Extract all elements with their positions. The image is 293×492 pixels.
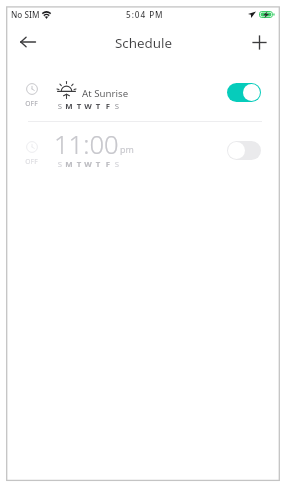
button[interactable]: Turn on schedule [227, 141, 261, 160]
staticText: T [73, 101, 85, 112]
staticText: OFF [21, 157, 42, 166]
button[interactable]: Add schedule [244, 27, 274, 57]
staticText: pm [120, 143, 134, 155]
staticText: F [102, 101, 114, 112]
staticText: No SIM [11, 9, 40, 20]
button[interactable]: OFF [7, 62, 280, 120]
staticText: S [54, 101, 66, 112]
staticText: F [102, 159, 114, 170]
staticText: At Sunrise [82, 87, 129, 100]
staticText: S [54, 159, 66, 170]
button[interactable]: Turn off schedule [227, 83, 261, 102]
staticText: W [82, 159, 94, 170]
staticText: T [92, 159, 104, 170]
staticText: 11:00 [54, 127, 119, 162]
staticText: 5:04 PM [126, 9, 164, 20]
button[interactable]: Back [13, 27, 43, 57]
button[interactable]: OFF [7, 120, 280, 178]
staticText: T [73, 159, 85, 170]
staticText: W [82, 101, 94, 112]
staticText: S [111, 159, 123, 170]
staticText: S [111, 101, 123, 112]
staticText: M [63, 101, 75, 112]
staticText: T [92, 101, 104, 112]
staticText: OFF [21, 99, 42, 108]
staticText: M [63, 159, 75, 170]
staticText: Schedule [115, 34, 173, 52]
